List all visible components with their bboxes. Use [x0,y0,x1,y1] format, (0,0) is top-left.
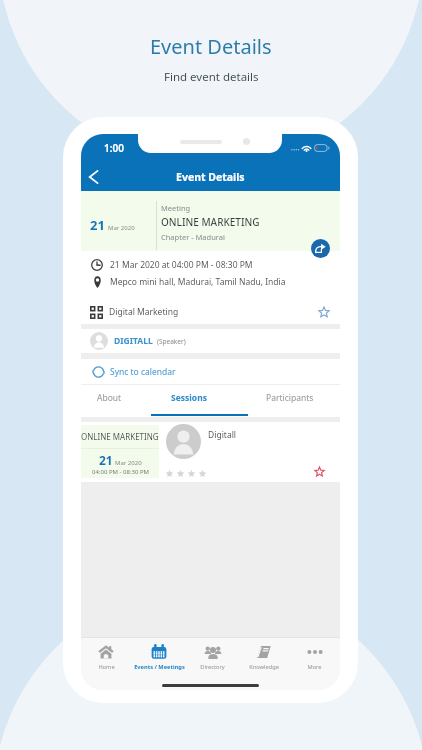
staticText: Meeting [161,203,191,213]
staticText: 1:00 [104,141,124,155]
staticText: Event Details [176,170,245,184]
button[interactable]: Digital Marketing [81,300,340,324]
staticText: 21 [90,216,105,234]
button[interactable]: Knowledge [238,643,289,677]
staticText: Events / Meetings [134,663,185,671]
button[interactable]: Home [81,643,131,677]
staticText: 04:00 PM - 08:30 PM [92,468,149,476]
staticText: About [97,392,122,404]
staticText: Sessions [171,392,207,404]
staticText: Mar 2020 [108,224,135,232]
button[interactable]: Share [311,239,330,258]
staticText: (Speaker) [157,337,186,346]
button[interactable]: Directory [187,643,238,677]
staticText: ONLINE MARKETING [81,431,159,442]
staticText: More [307,663,322,671]
button[interactable]: Events / Meetings [131,643,187,677]
button[interactable]: Sessions [138,385,240,417]
staticText: Knowledge [249,663,279,671]
staticText: ONLINE MARKETING [161,215,260,229]
staticText: 21 Mar 2020 at 04:00 PM - 08:30 PM [110,259,253,271]
staticText: Event Details [150,33,272,60]
staticText: Digital Marketing [109,306,179,318]
staticText: Sync to calendar [110,366,176,378]
button[interactable]: DIGITALL [81,329,340,353]
staticText: Chapter - Madurai [161,232,225,242]
staticText: Participants [266,392,314,404]
button[interactable]: About [81,385,138,417]
staticText: Mar 2020 [115,459,142,467]
button[interactable]: Favourite [312,464,326,478]
button[interactable]: Participants [240,385,340,417]
staticText: Directory [200,663,225,671]
staticText: Home [98,663,115,671]
staticText: Digitall [208,429,237,441]
staticText: Mepco mini hall, Madurai, Tamil Nadu, In… [110,276,286,288]
staticText: Find event details [164,69,259,85]
button[interactable]: Sync to calendar [81,359,340,384]
staticText: 21 [99,452,113,468]
staticText: DIGITALL [114,335,153,347]
button[interactable]: Back [82,166,104,188]
button[interactable]: More [289,643,340,677]
button[interactable]: ONLINE MARKETING [81,418,340,483]
